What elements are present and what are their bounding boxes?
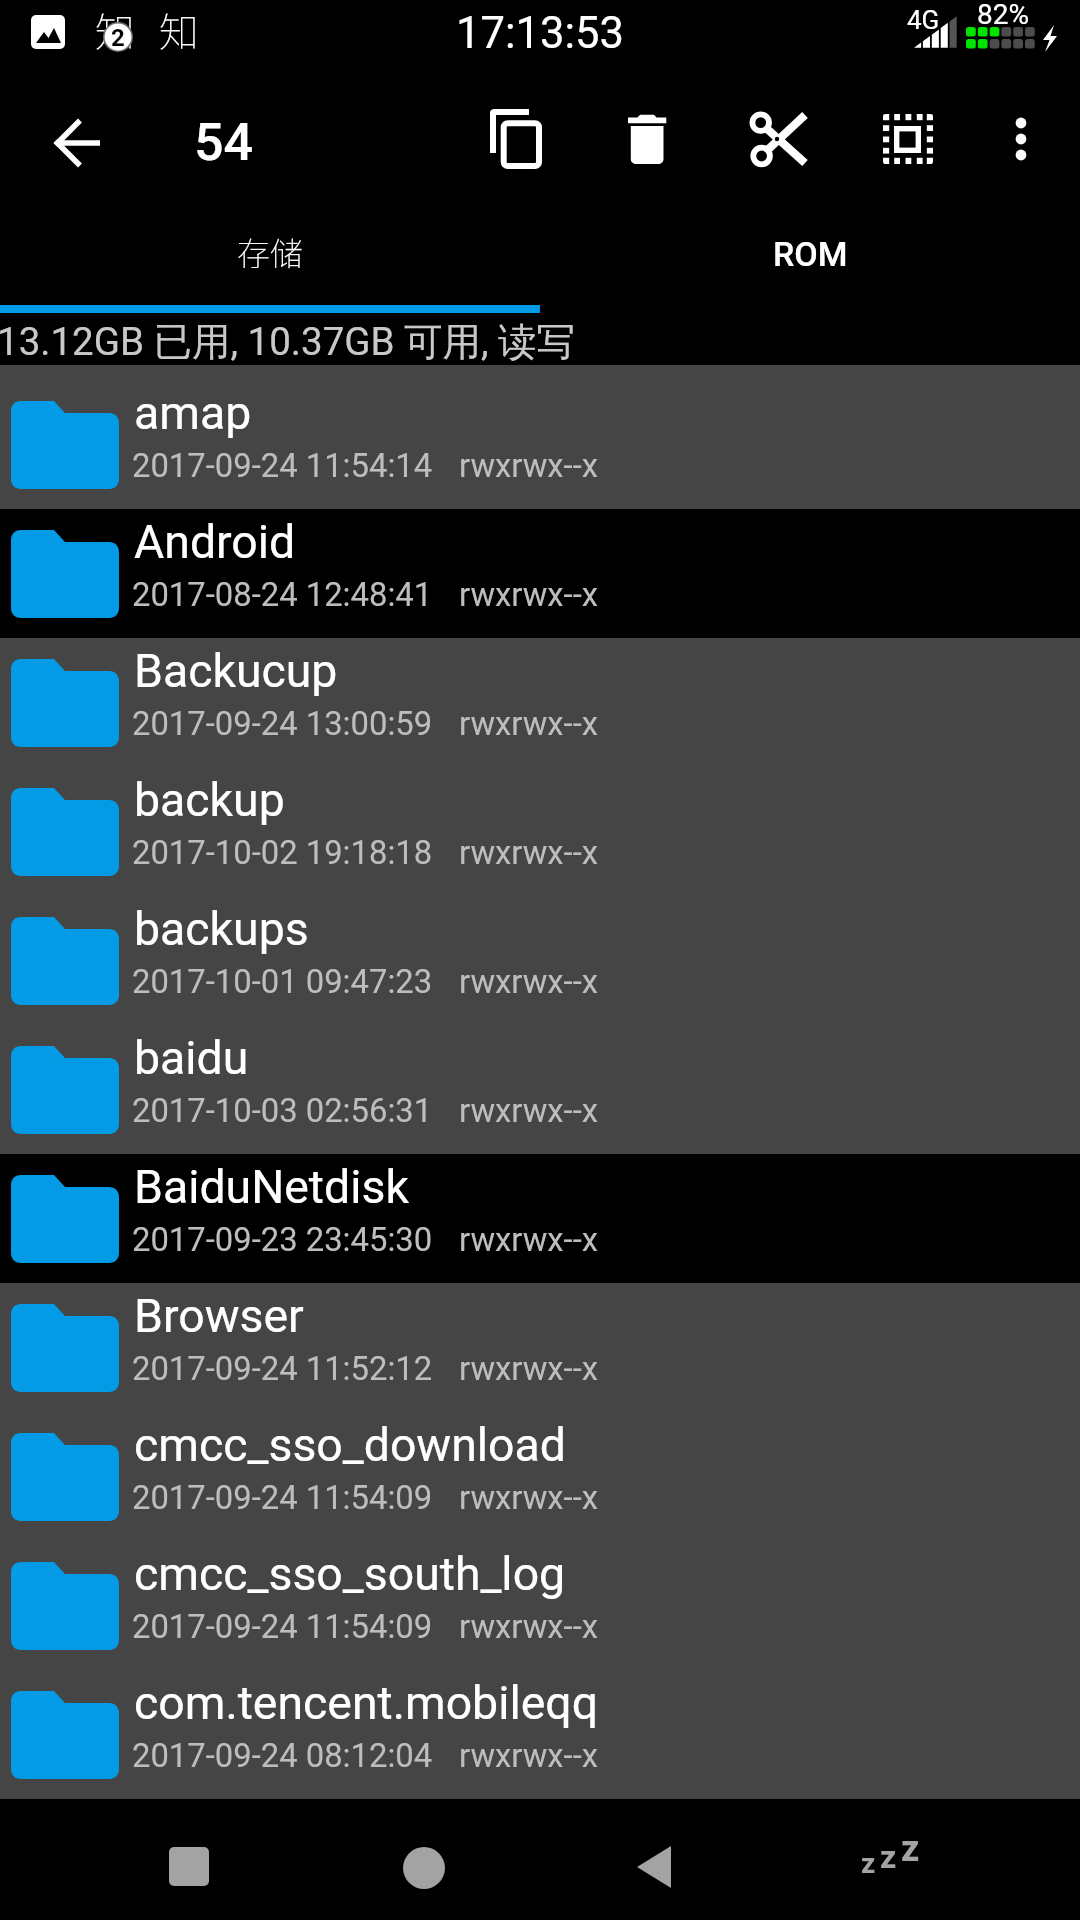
button[interactable]: Cut xyxy=(729,92,825,188)
staticText: Browser xyxy=(134,1289,304,1343)
staticText: Android xyxy=(134,515,296,569)
button[interactable]: cmcc_sso_download xyxy=(0,1412,1080,1541)
button[interactable]: com.tencent.mobileqq xyxy=(0,1670,1080,1799)
button[interactable]: cmcc_sso_south_log xyxy=(0,1541,1080,1670)
button[interactable]: Home xyxy=(364,1810,484,1910)
button[interactable]: More options xyxy=(976,92,1066,182)
staticText: 2017-09-24 11:52:12 xyxy=(132,1350,433,1388)
button[interactable]: backup xyxy=(0,767,1080,896)
button[interactable]: backups xyxy=(0,896,1080,1025)
staticText: 54 xyxy=(194,112,254,173)
staticText: rwxrwx--x xyxy=(459,1350,599,1388)
button[interactable]: Delete xyxy=(600,92,696,188)
staticText: cmcc_sso_download xyxy=(134,1418,566,1472)
button[interactable]: amap xyxy=(0,380,1080,509)
staticText: 4G xyxy=(907,5,940,35)
staticText: z xyxy=(861,1847,876,1880)
button[interactable]: Browser xyxy=(0,1283,1080,1412)
button[interactable]: Back xyxy=(595,1810,715,1910)
staticText: 2017-09-24 11:54:09 xyxy=(132,1479,433,1517)
staticText: rwxrwx--x xyxy=(459,1737,599,1775)
staticText: 2017-09-24 08:12:04 xyxy=(132,1737,433,1775)
button[interactable]: Backucup xyxy=(0,638,1080,767)
staticText: rwxrwx--x xyxy=(459,576,599,614)
staticText: backup xyxy=(134,773,285,827)
staticText: 2017-10-03 02:56:31 xyxy=(132,1092,433,1130)
staticText: 2 xyxy=(111,24,125,52)
button[interactable]: Select all xyxy=(859,92,955,188)
staticText: 2017-08-24 12:48:41 xyxy=(132,576,433,614)
staticText: z xyxy=(901,1828,920,1870)
staticText: 2017-09-24 11:54:09 xyxy=(132,1608,433,1646)
staticText: 知 xyxy=(95,1,135,59)
button[interactable]: BaiduNetdisk xyxy=(0,1154,1080,1283)
button[interactable]: Android xyxy=(0,509,1080,638)
staticText: 2017-10-01 09:47:23 xyxy=(132,963,433,1001)
button[interactable]: Recent apps xyxy=(128,1810,248,1910)
staticText: 2017-09-23 23:45:30 xyxy=(132,1221,433,1259)
staticText: rwxrwx--x xyxy=(459,705,599,743)
staticText: cmcc_sso_south_log xyxy=(134,1547,566,1601)
staticText: 知 xyxy=(159,1,199,59)
staticText: backups xyxy=(134,902,309,956)
staticText: baidu xyxy=(134,1031,249,1085)
button[interactable]: 存储 xyxy=(0,205,540,305)
staticText: 13.12GB 已用, 10.37GB 可用, 读写 xyxy=(0,318,576,367)
staticText: rwxrwx--x xyxy=(459,1221,599,1259)
staticText: Backucup xyxy=(134,644,338,698)
button[interactable]: Sleep xyxy=(830,1810,950,1910)
staticText: 2017-09-24 13:00:59 xyxy=(132,705,433,743)
staticText: ROM xyxy=(773,234,848,274)
staticText: rwxrwx--x xyxy=(459,963,599,1001)
staticText: rwxrwx--x xyxy=(459,1608,599,1646)
staticText: rwxrwx--x xyxy=(459,447,599,485)
staticText: rwxrwx--x xyxy=(459,1092,599,1130)
staticText: 82% xyxy=(977,0,1029,31)
button[interactable]: Copy xyxy=(468,92,564,188)
staticText: com.tencent.mobileqq xyxy=(134,1676,599,1730)
staticText: 17:13:53 xyxy=(456,8,624,59)
staticText: BaiduNetdisk xyxy=(134,1160,409,1214)
staticText: 2017-09-24 11:54:14 xyxy=(132,447,433,485)
staticText: rwxrwx--x xyxy=(459,834,599,872)
staticText: 2017-10-02 19:18:18 xyxy=(132,834,433,872)
staticText: rwxrwx--x xyxy=(459,1479,599,1517)
staticText: z xyxy=(880,1838,897,1876)
button[interactable]: ROM xyxy=(540,205,1080,305)
button[interactable]: Back xyxy=(28,92,124,188)
staticText: amap xyxy=(134,386,252,440)
staticText: 存储 xyxy=(237,228,303,276)
button[interactable]: baidu xyxy=(0,1025,1080,1154)
